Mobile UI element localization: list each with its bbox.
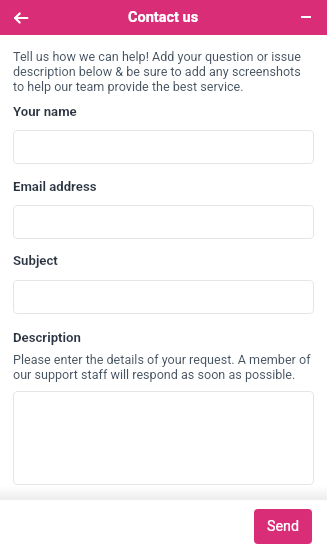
button[interactable] [13,391,314,485]
button[interactable]: Send [254,509,312,544]
staticText: Email address [13,179,97,194]
button[interactable] [13,280,314,314]
staticText: Subject [13,253,58,268]
staticText: Send [267,518,300,535]
staticText: Your name [13,104,77,119]
button[interactable] [13,205,314,239]
button[interactable]: Minimize [294,5,318,29]
button[interactable]: Back [7,4,35,32]
staticText: Description [13,330,81,345]
staticText: Please enter the details of your request… [13,352,314,382]
staticText: Tell us how we can help! Add your questi… [13,49,314,94]
staticText: Contact us [128,9,199,26]
button[interactable] [13,130,314,164]
